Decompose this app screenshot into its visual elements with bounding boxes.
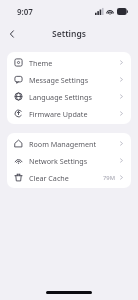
staticText: Room Management (29, 139, 97, 149)
staticText: Network Settings (29, 156, 88, 166)
staticText: Firmware Update (29, 109, 88, 119)
staticText: Language Settings (29, 92, 92, 102)
button[interactable]: Firmware Update (7, 105, 131, 122)
staticText: Clear Cache (29, 173, 69, 183)
button[interactable]: Room Management (7, 135, 131, 152)
staticText: 9:07 (17, 6, 33, 17)
button[interactable]: Theme (7, 54, 131, 71)
button[interactable]: Language Settings (7, 88, 131, 105)
button[interactable]: Message Settings (7, 71, 131, 88)
button[interactable]: Back (0, 22, 24, 46)
staticText: Message Settings (29, 75, 89, 85)
staticText: 79M (103, 174, 115, 182)
staticText: Settings (52, 28, 86, 40)
staticText: Theme (29, 58, 53, 68)
button[interactable]: Clear Cache (7, 169, 131, 186)
button[interactable]: Network Settings (7, 152, 131, 169)
